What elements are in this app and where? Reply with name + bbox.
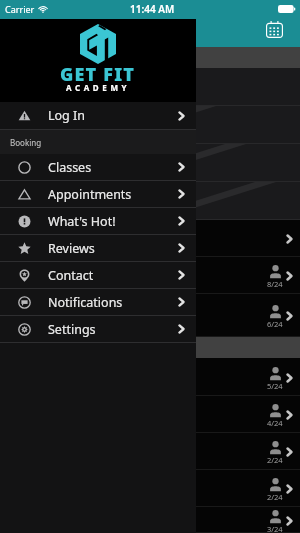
- staticText: Notifications: [48, 294, 123, 311]
- button[interactable]: 3/24: [0, 507, 300, 533]
- staticText: 8/24: [267, 279, 283, 289]
- staticText: 2/24: [267, 455, 283, 465]
- staticText: Carrier: [5, 3, 35, 15]
- button[interactable]: 4/24: [0, 396, 300, 433]
- staticText: 2/24: [267, 492, 283, 502]
- button[interactable]: [0, 106, 300, 144]
- button[interactable]: What's Hot!: [0, 208, 196, 235]
- button[interactable]: Appointments: [0, 181, 196, 208]
- staticText: Reviews: [48, 240, 95, 257]
- button[interactable]: Calendar: [261, 16, 287, 42]
- staticText: 11:44 AM: [130, 2, 175, 16]
- staticText: 4/24: [267, 418, 283, 428]
- button[interactable]: 6/24: [0, 294, 300, 337]
- staticText: GET FIT: [60, 62, 136, 87]
- staticText: TOMORROW: [10, 341, 71, 355]
- button[interactable]: Reviews: [0, 235, 196, 262]
- button[interactable]: 2/24: [0, 433, 300, 470]
- staticText: Classes: [48, 159, 92, 176]
- staticText: 5/24: [267, 381, 283, 391]
- button[interactable]: Notifications: [0, 289, 196, 316]
- staticText: Booking: [10, 137, 42, 148]
- staticText: Appointments: [48, 186, 132, 203]
- button[interactable]: [0, 182, 300, 220]
- staticText: ACADEMY: [66, 82, 131, 93]
- button[interactable]: [0, 68, 300, 106]
- staticText: What's Hot!: [48, 213, 116, 230]
- button[interactable]: 2/24: [0, 470, 300, 507]
- button[interactable]: Contact: [0, 262, 196, 289]
- button[interactable]: Classes: [0, 154, 196, 181]
- button[interactable]: Settings: [0, 316, 196, 343]
- button[interactable]: 5/24: [0, 358, 300, 396]
- button[interactable]: 8/24: [0, 257, 300, 294]
- button[interactable]: [0, 144, 300, 182]
- staticText: 3/24: [267, 524, 283, 533]
- button[interactable]: [0, 220, 300, 257]
- staticText: Log In: [48, 107, 86, 124]
- staticText: Contact: [48, 267, 94, 284]
- staticText: Settings: [48, 321, 96, 338]
- staticText: 6/24: [267, 319, 283, 329]
- button[interactable]: Log In: [0, 102, 196, 130]
